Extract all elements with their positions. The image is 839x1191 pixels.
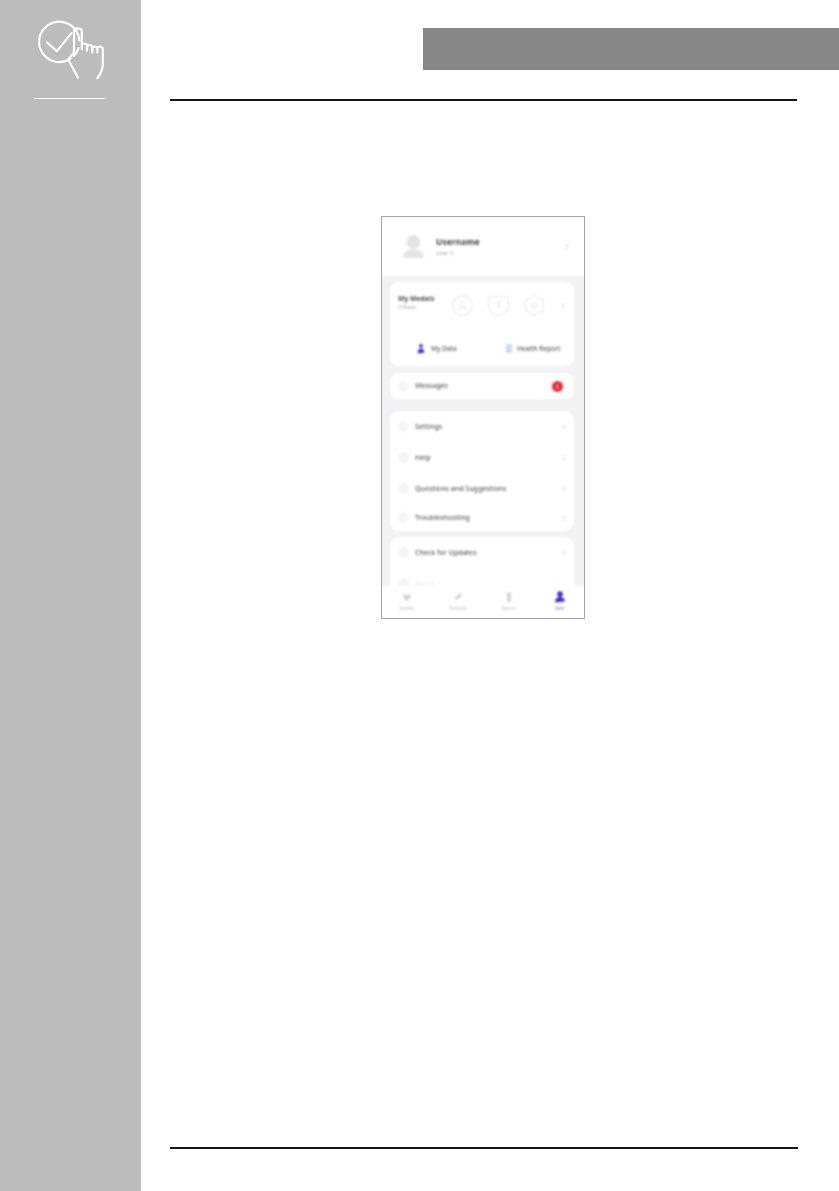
staticText: Device xyxy=(501,605,516,611)
staticText: Health xyxy=(399,605,414,611)
button[interactable]: Health Report xyxy=(469,330,574,366)
button[interactable]: Exercise xyxy=(432,586,483,619)
button[interactable]: Username xyxy=(381,217,585,276)
button[interactable]: Help xyxy=(390,442,574,473)
button[interactable]: My Data xyxy=(390,330,469,366)
staticText: My Data xyxy=(431,344,457,353)
button[interactable]: My Medals xyxy=(390,282,574,330)
button[interactable]: Check for Updates xyxy=(390,537,574,568)
staticText: user 2 xyxy=(436,249,454,257)
staticText: Check for Updates xyxy=(415,548,477,558)
staticText: My Medals xyxy=(398,294,435,303)
staticText: Settings xyxy=(415,422,443,432)
button[interactable]: Settings xyxy=(390,411,574,442)
staticText: 3 Pieces xyxy=(398,304,417,311)
staticText: Questions and Suggestions xyxy=(415,484,507,494)
staticText: Messages xyxy=(415,381,449,391)
button[interactable]: User xyxy=(534,586,585,619)
button[interactable]: Troubleshooting xyxy=(390,504,574,531)
staticText: Username xyxy=(436,236,480,248)
button[interactable]: Messages xyxy=(390,373,574,399)
button[interactable]: Questions and Suggestions xyxy=(390,473,574,504)
staticText: Help xyxy=(415,453,431,463)
button[interactable]: Health xyxy=(381,586,432,619)
staticText: Exercise xyxy=(449,605,467,611)
staticText: 1 xyxy=(556,383,560,390)
staticText: User xyxy=(554,605,565,611)
button[interactable]: About xyxy=(390,568,574,599)
staticText: Health Report xyxy=(517,344,561,353)
button[interactable]: Device xyxy=(483,586,534,619)
staticText: Troubleshooting xyxy=(415,513,470,523)
